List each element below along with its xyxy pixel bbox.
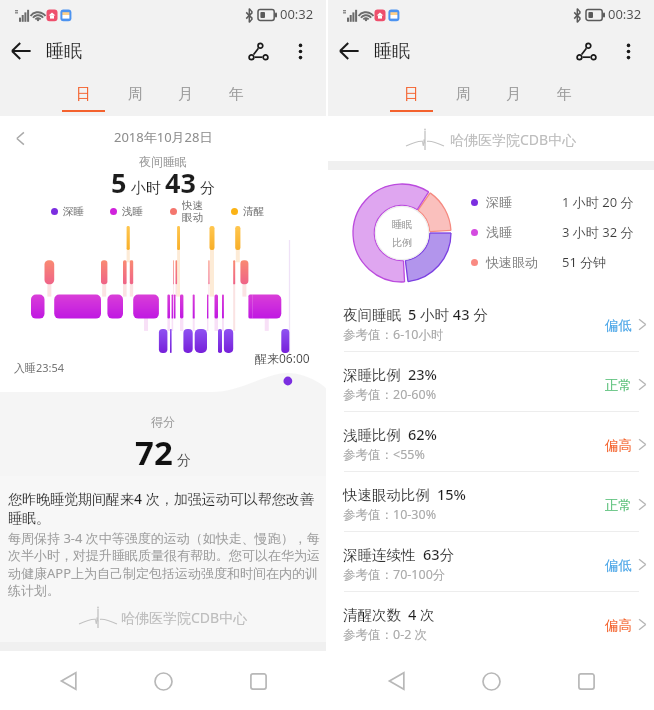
- staticText: 00:32: [280, 5, 314, 23]
- staticText: 哈佛医学院CDB中心: [121, 608, 248, 627]
- button[interactable]: 周: [438, 74, 488, 116]
- staticText: 43: [165, 164, 196, 201]
- staticText: 3 小时 32 分: [562, 223, 634, 241]
- button[interactable]: More options: [608, 31, 648, 71]
- staticText: 比例: [392, 236, 412, 249]
- staticText: 深睡比例: [343, 366, 401, 384]
- staticText: 夜间睡眠: [139, 154, 187, 169]
- button[interactable]: 夜间睡眠: [328, 292, 654, 352]
- staticText: 浅睡: [486, 224, 512, 240]
- staticText: 偏低: [605, 317, 632, 334]
- staticText: 睡眠: [392, 218, 412, 231]
- button[interactable]: 年: [211, 74, 261, 116]
- button[interactable]: 快速眼动比例: [328, 472, 654, 532]
- button[interactable]: More options: [280, 31, 320, 71]
- staticText: 参考值：70-100分: [343, 566, 446, 583]
- staticText: 参考值：0-2 次: [343, 626, 428, 643]
- staticText: 您昨晚睡觉期间醒来4 次，加强运动可以帮您改善睡眠。: [8, 489, 316, 527]
- staticText: 分: [177, 452, 191, 470]
- staticText: 深睡: [486, 194, 512, 210]
- button[interactable]: 深睡比例: [328, 352, 654, 412]
- staticText: 快速眼动: [486, 254, 538, 270]
- staticText: 参考值：20-60%: [343, 386, 437, 403]
- staticText: 浅睡: [122, 205, 143, 218]
- staticText: 分: [200, 179, 215, 198]
- staticText: 月: [178, 85, 193, 104]
- staticText: 周: [456, 85, 471, 104]
- button[interactable]: Home: [137, 655, 189, 707]
- staticText: 偏高: [605, 617, 632, 634]
- button[interactable]: Back: [0, 30, 42, 72]
- button[interactable]: Back: [43, 655, 95, 707]
- button[interactable]: 日: [58, 74, 108, 116]
- staticText: 63分: [423, 544, 455, 564]
- staticText: 入睡23:54: [14, 360, 65, 375]
- button[interactable]: Back: [371, 655, 423, 707]
- button[interactable]: 深睡连续性: [328, 532, 654, 592]
- button[interactable]: Share: [564, 29, 608, 73]
- staticText: 月: [506, 85, 521, 104]
- staticText: 00:32: [608, 5, 642, 23]
- staticText: 参考值：10-30%: [343, 506, 437, 523]
- staticText: 夜间睡眠: [343, 306, 401, 324]
- button[interactable]: 周: [110, 74, 160, 116]
- staticText: 得分: [151, 414, 175, 429]
- staticText: 参考值：<55%: [343, 446, 425, 463]
- button[interactable]: Home: [465, 655, 517, 707]
- staticText: 年: [557, 85, 572, 104]
- staticText: 15%: [437, 484, 466, 504]
- staticText: 清醒: [243, 205, 264, 218]
- staticText: 参考值：6-10小时: [343, 326, 444, 343]
- staticText: 72: [135, 430, 173, 475]
- button[interactable]: 月: [160, 74, 210, 116]
- button[interactable]: 月: [488, 74, 538, 116]
- button[interactable]: Share: [236, 29, 280, 73]
- staticText: 2018年10月28日: [114, 128, 213, 146]
- button[interactable]: Recent apps: [232, 655, 284, 707]
- button[interactable]: 清醒次数: [328, 592, 654, 652]
- staticText: 周: [128, 85, 143, 104]
- button[interactable]: 浅睡比例: [328, 412, 654, 472]
- staticText: 正常: [605, 497, 632, 514]
- staticText: 23%: [408, 364, 437, 384]
- staticText: 深睡: [63, 205, 84, 218]
- button[interactable]: Recent apps: [560, 655, 612, 707]
- staticText: 深睡连续性: [343, 546, 416, 564]
- button[interactable]: 年: [539, 74, 589, 116]
- staticText: 1 小时 20 分: [562, 193, 634, 211]
- staticText: 小时: [131, 179, 161, 198]
- staticText: 62%: [408, 424, 437, 444]
- staticText: 哈佛医学院CDB中心: [450, 130, 577, 149]
- staticText: 每周保持 3-4 次中等强度的运动（如快走、慢跑），每次半小时，对提升睡眠质量很…: [8, 529, 320, 599]
- staticText: 4 次: [408, 604, 435, 624]
- staticText: 5 小时 43 分: [408, 304, 488, 324]
- staticText: 正常: [605, 377, 632, 394]
- staticText: 清醒次数: [343, 606, 401, 624]
- button[interactable]: Back: [328, 30, 370, 72]
- staticText: 年: [229, 85, 244, 104]
- staticText: 浅睡比例: [343, 426, 401, 444]
- staticText: 醒来06:00: [255, 350, 310, 366]
- staticText: 日: [76, 85, 91, 104]
- staticText: 偏高: [605, 437, 632, 454]
- staticText: 睡眠: [374, 40, 410, 63]
- staticText: 51 分钟: [562, 253, 607, 271]
- staticText: 睡眠: [46, 40, 82, 63]
- staticText: 快速眼动比例: [343, 486, 430, 504]
- staticText: 快速 眼动: [182, 199, 203, 223]
- button[interactable]: Previous day: [4, 122, 36, 154]
- button[interactable]: 日: [386, 74, 436, 116]
- staticText: 5: [111, 164, 127, 201]
- staticText: 日: [404, 85, 419, 104]
- staticText: 偏低: [605, 557, 632, 574]
